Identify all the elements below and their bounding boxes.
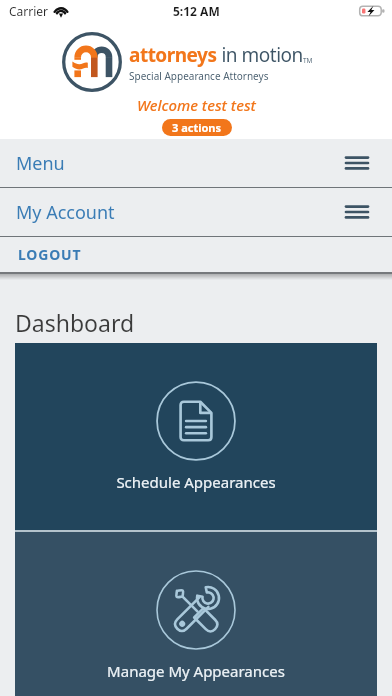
- staticText: Dashboard: [15, 307, 135, 338]
- staticText: Special Appearance Attorneys: [129, 69, 269, 83]
- button[interactable]: Menu: [0, 139, 392, 187]
- staticText: Menu: [16, 151, 65, 176]
- button[interactable]: 3 actions: [162, 119, 232, 136]
- staticText: Manage My Appearances: [107, 661, 285, 681]
- staticText: Carrier: [9, 3, 49, 19]
- button[interactable]: My Account: [0, 188, 392, 236]
- other: Open Menu: [346, 155, 368, 171]
- staticText: LOGOUT: [18, 245, 82, 264]
- staticText: TM: [303, 56, 313, 65]
- staticText: Welcome test test: [137, 95, 256, 115]
- staticText: in motion: [217, 42, 303, 68]
- button[interactable]: LOGOUT: [0, 237, 392, 272]
- staticText: My Account: [16, 200, 115, 225]
- staticText: 3 actions: [172, 120, 222, 135]
- staticText: attorneys: [129, 42, 217, 68]
- button[interactable]: Manage My Appearances: [15, 532, 377, 696]
- other: Open My Account: [346, 204, 368, 220]
- button[interactable]: Schedule Appearances: [15, 343, 377, 530]
- staticText: 5:12 AM: [173, 3, 220, 19]
- staticText: Schedule Appearances: [116, 472, 276, 492]
